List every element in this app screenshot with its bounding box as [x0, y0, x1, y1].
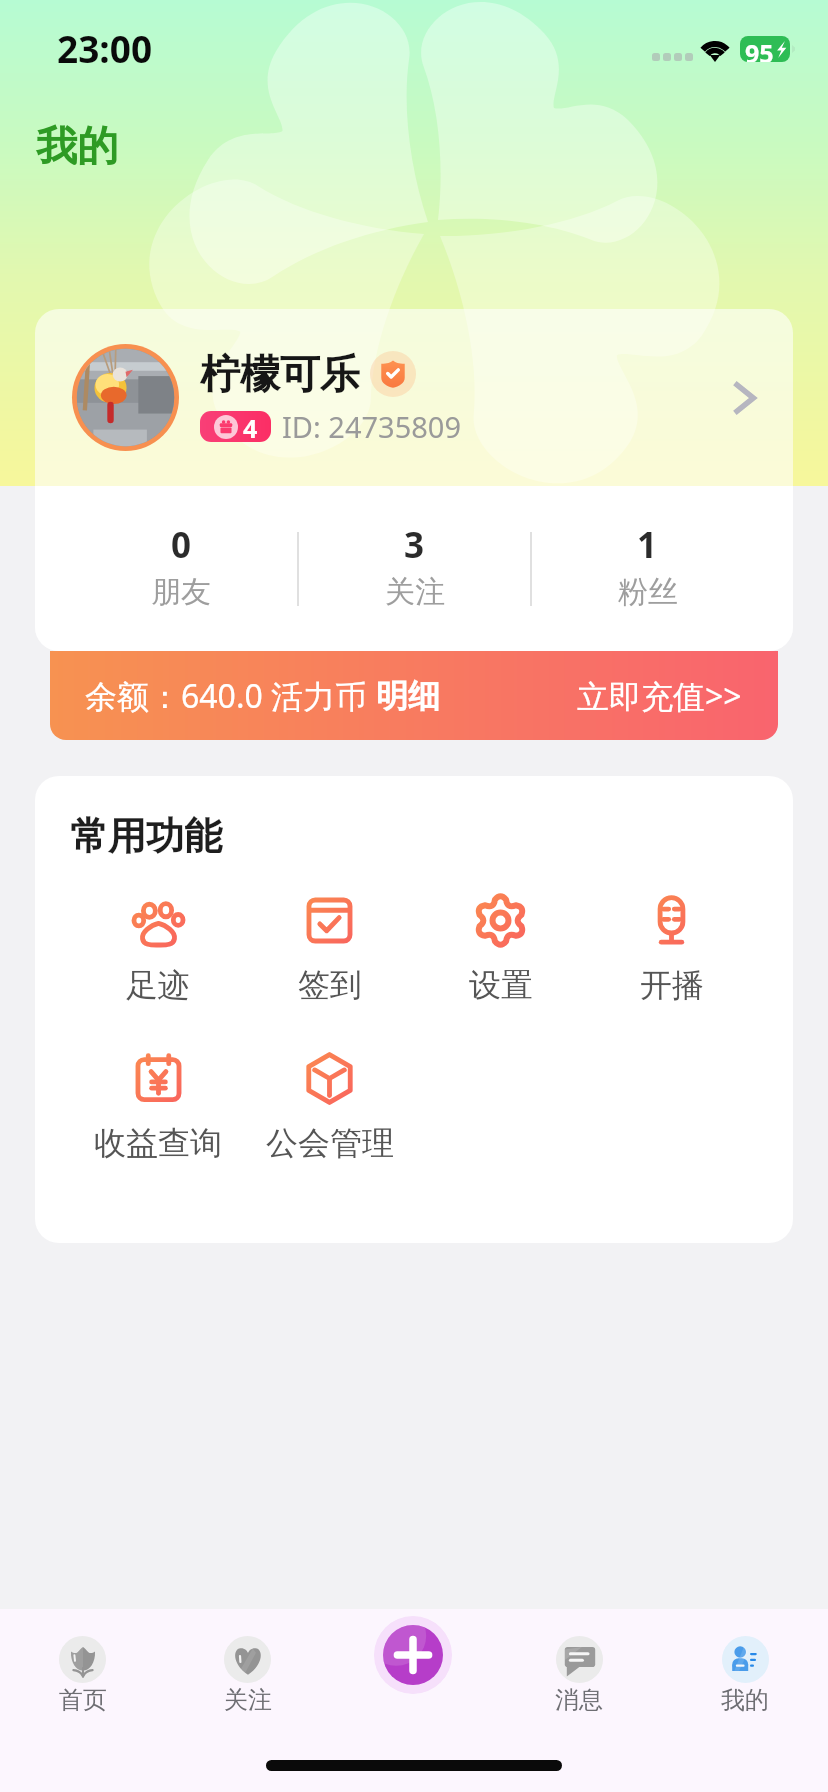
button[interactable]: 设置 — [415, 892, 586, 1005]
staticText: 立即充值>> — [577, 674, 742, 718]
staticText: 23:00 — [57, 23, 153, 73]
staticText: 粉丝 — [618, 573, 678, 611]
staticText: 常用功能 — [70, 812, 222, 860]
staticText: 公会管理 — [266, 1123, 394, 1163]
staticText: 3 — [404, 521, 425, 569]
staticText: 首页 — [59, 1685, 107, 1715]
button[interactable]: 我的 — [662, 1636, 828, 1715]
staticText: 足迹 — [126, 965, 190, 1005]
button[interactable]: 0 — [65, 524, 297, 614]
button[interactable]: 公会管理 — [244, 1050, 415, 1163]
button[interactable]: 签到 — [244, 892, 415, 1005]
button[interactable]: 柠檬可乐 — [35, 309, 793, 486]
button[interactable]: 收益查询 — [72, 1050, 244, 1163]
staticText: 消息 — [555, 1685, 603, 1715]
staticText: 关注 — [224, 1685, 272, 1715]
staticText: 关注 — [385, 573, 445, 611]
staticText: 余额：640.0 活力币 — [85, 674, 376, 718]
button[interactable]: 余额：640.0 活力币 — [50, 651, 778, 740]
staticText: ID: 24735809 — [282, 407, 462, 446]
button[interactable]: 消息 — [496, 1636, 662, 1715]
button[interactable]: 3 — [299, 524, 530, 614]
button[interactable]: 4 — [200, 411, 271, 442]
staticText: 开播 — [640, 965, 704, 1005]
button[interactable]: 足迹 — [72, 892, 244, 1005]
staticText: 柠檬可乐 — [200, 349, 360, 399]
staticText: 95 — [745, 36, 774, 62]
staticText: 我的 — [721, 1685, 769, 1715]
staticText: 4 — [243, 411, 258, 442]
staticText: 朋友 — [151, 573, 211, 611]
staticText: 0 — [171, 521, 192, 569]
staticText: 设置 — [469, 965, 533, 1005]
staticText: 收益查询 — [94, 1123, 222, 1163]
button[interactable]: Profile detail — [723, 376, 767, 420]
button[interactable]: 首页 — [0, 1636, 165, 1715]
button[interactable]: Create post — [374, 1616, 452, 1694]
staticText: 1 — [637, 521, 658, 569]
staticText: 签到 — [298, 965, 362, 1005]
button[interactable]: 1 — [532, 524, 763, 614]
staticText: 我的 — [36, 121, 118, 173]
button[interactable]: 开播 — [586, 892, 757, 1005]
button[interactable]: 关注 — [165, 1636, 330, 1715]
staticText: 明细 — [376, 676, 440, 716]
